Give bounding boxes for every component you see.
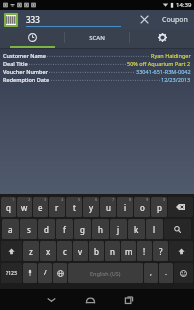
staticText: Redemption Date — [3, 76, 50, 83]
staticText: u — [106, 202, 111, 213]
button[interactable]: Voucher Number — [0, 67, 194, 75]
button[interactable]: f — [56, 219, 73, 239]
button[interactable]: Customer Name — [0, 51, 194, 59]
button[interactable]: . — [159, 263, 173, 283]
button[interactable]: ?123 — [1, 263, 22, 283]
button[interactable]: Backspace — [168, 197, 193, 217]
button[interactable]: b — [89, 241, 104, 261]
staticText: ? — [159, 246, 163, 257]
staticText: q — [6, 202, 11, 213]
button[interactable]: ! — [137, 241, 152, 261]
button[interactable]: x — [40, 241, 56, 261]
staticText: p — [157, 202, 162, 213]
staticText: 1 — [12, 197, 15, 202]
button[interactable]: ? — [153, 241, 168, 261]
staticText: 6 — [95, 197, 98, 202]
staticText: g — [80, 224, 85, 235]
staticText: 5 — [78, 197, 81, 202]
staticText: / — [44, 268, 47, 278]
button[interactable]: Settings — [130, 29, 194, 46]
button[interactable]: Home — [78, 289, 102, 310]
button[interactable]: o — [134, 197, 150, 217]
button[interactable]: r — [49, 197, 65, 217]
staticText: . — [165, 268, 167, 278]
staticText: 4 — [61, 197, 64, 202]
button[interactable]: Emoji — [174, 263, 193, 283]
button[interactable]: l — [146, 219, 163, 239]
button[interactable]: n — [105, 241, 120, 261]
staticText: 7 — [112, 197, 115, 202]
button[interactable]: Change language — [53, 263, 67, 283]
staticText: o — [140, 202, 145, 213]
staticText: ?123 — [6, 270, 17, 277]
staticText: i — [124, 202, 127, 213]
staticText: z — [29, 246, 33, 257]
button[interactable]: u — [100, 197, 116, 217]
button[interactable]: k — [128, 219, 145, 239]
staticText: t — [73, 202, 76, 213]
button[interactable]: Coupon — [160, 15, 190, 25]
staticText: 9 — [146, 197, 149, 202]
button[interactable]: Clear — [138, 13, 150, 25]
staticText: Voucher Number — [3, 68, 48, 75]
button[interactable]: s — [20, 219, 37, 239]
staticText: s — [27, 224, 31, 235]
button[interactable]: c — [57, 241, 72, 261]
button[interactable]: t — [66, 197, 82, 217]
button[interactable]: English (US) — [68, 263, 143, 283]
staticText: y — [89, 202, 94, 213]
staticText: h — [98, 224, 103, 235]
staticText: l — [153, 224, 156, 235]
button[interactable]: a — [2, 219, 19, 239]
staticText: k — [134, 224, 139, 235]
staticText: Deal Title — [3, 60, 28, 67]
button[interactable]: v — [73, 241, 88, 261]
button[interactable]: Redemption Date — [0, 75, 194, 83]
button[interactable]: Deal Title — [0, 59, 194, 67]
button[interactable]: j — [110, 219, 127, 239]
button[interactable]: d — [38, 219, 55, 239]
staticText: d — [44, 224, 49, 235]
staticText: 0 — [163, 197, 166, 202]
button[interactable]: i — [117, 197, 133, 217]
button[interactable]: e — [33, 197, 48, 217]
button[interactable]: App icon — [4, 13, 18, 27]
staticText: f — [63, 224, 66, 235]
staticText: 14:39 — [176, 1, 192, 9]
staticText: r — [55, 202, 59, 213]
button[interactable]: Hide keyboard — [39, 289, 63, 310]
staticText: English (US) — [90, 270, 121, 277]
button[interactable]: q — [1, 197, 16, 217]
button[interactable]: w — [17, 197, 32, 217]
staticText: 333 — [26, 14, 40, 25]
staticText: ! — [143, 246, 146, 257]
button[interactable]: z — [23, 241, 39, 261]
button[interactable]: Recent apps — [117, 289, 141, 310]
staticText: n — [110, 246, 115, 257]
staticText: Customer Name — [3, 52, 46, 59]
button[interactable]: Shift — [169, 241, 193, 261]
staticText: c — [63, 246, 67, 257]
button[interactable]: m — [121, 241, 136, 261]
staticText: Ryan Haidinger — [151, 52, 191, 59]
staticText: 3 — [44, 197, 47, 202]
button[interactable]: y — [83, 197, 99, 217]
button[interactable]: p — [151, 197, 167, 217]
staticText: w — [21, 202, 28, 213]
staticText: 50% off Aquarium Part 2 — [127, 60, 191, 67]
staticText: SCAN — [89, 34, 105, 42]
staticText: v — [78, 246, 83, 257]
button[interactable]: , — [144, 263, 158, 283]
button[interactable]: Shift — [1, 241, 22, 261]
button[interactable]: Voice input — [23, 263, 37, 283]
button[interactable]: g — [74, 219, 91, 239]
staticText: 8 — [129, 197, 132, 202]
button[interactable]: / — [38, 263, 52, 283]
button[interactable]: SCAN — [65, 29, 129, 46]
staticText: j — [117, 224, 120, 235]
staticText: 33041-651-R3M-0042 — [136, 68, 191, 75]
button[interactable]: Search — [164, 219, 191, 239]
staticText: Coupon — [162, 15, 188, 25]
button[interactable]: History — [0, 29, 64, 46]
button[interactable]: h — [92, 219, 109, 239]
